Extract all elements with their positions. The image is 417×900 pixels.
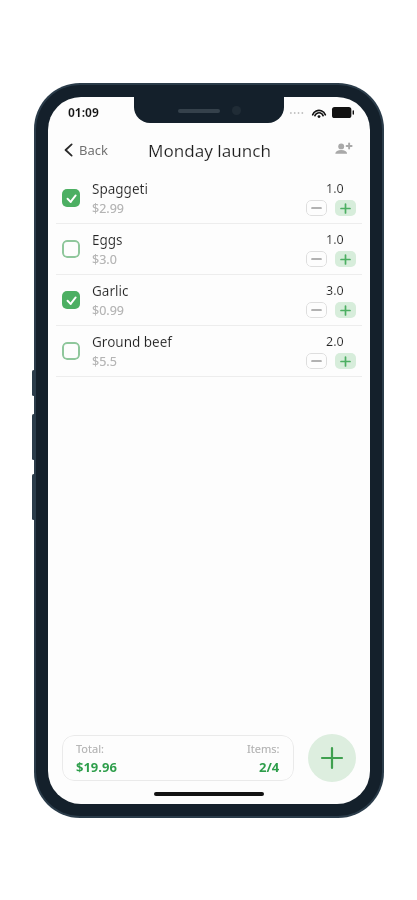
staticText: Back (79, 141, 108, 159)
staticText: $0.99 (92, 302, 124, 319)
button[interactable]: Add item (308, 734, 356, 782)
staticText: 3.0 (326, 282, 344, 299)
staticText: Spaggeti (92, 180, 148, 198)
button[interactable]: Checked (48, 275, 370, 325)
staticText: $2.99 (92, 200, 124, 217)
staticText: 01:09 (68, 104, 99, 120)
staticText: 1.0 (326, 231, 344, 248)
button[interactable]: Increase quantity (335, 251, 356, 267)
staticText: $5.5 (92, 353, 117, 370)
button[interactable]: Total: (62, 735, 294, 781)
staticText: $3.0 (92, 251, 117, 268)
button[interactable]: Checked (62, 291, 80, 309)
staticText: Items: (247, 741, 280, 756)
button[interactable]: Unchecked (48, 326, 370, 376)
staticText: Total: (76, 741, 104, 756)
button[interactable]: Add person (328, 135, 358, 165)
button[interactable]: Checked (48, 173, 370, 223)
button[interactable]: Decrease quantity (306, 251, 327, 267)
button[interactable]: Checked (62, 189, 80, 207)
staticText: Ground beef (92, 333, 172, 351)
button[interactable]: Unchecked (62, 240, 80, 258)
staticText: 1.0 (326, 180, 344, 197)
button[interactable]: Decrease quantity (306, 200, 327, 216)
staticText: Eggs (92, 231, 123, 249)
button[interactable]: Unchecked (62, 342, 80, 360)
staticText: $19.96 (76, 758, 117, 776)
staticText: Monday launch (148, 139, 271, 162)
button[interactable]: Increase quantity (335, 200, 356, 216)
staticText: 2/4 (259, 758, 280, 776)
staticText: Garlic (92, 282, 129, 300)
button[interactable]: Decrease quantity (306, 353, 327, 369)
button[interactable]: Unchecked (48, 224, 370, 274)
button[interactable]: Increase quantity (335, 353, 356, 369)
button[interactable]: Decrease quantity (306, 302, 327, 318)
button[interactable]: Increase quantity (335, 302, 356, 318)
button[interactable]: Back (58, 135, 114, 165)
staticText: 2.0 (326, 333, 344, 350)
